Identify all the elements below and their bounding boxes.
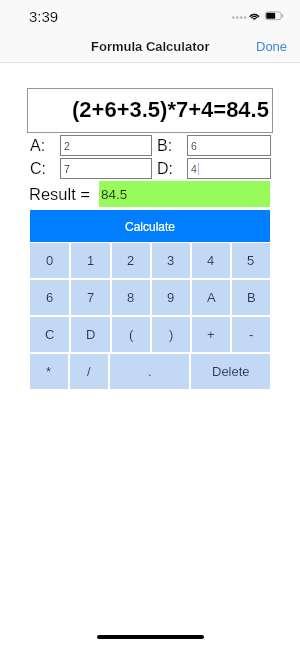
button[interactable]: 9 (152, 280, 190, 315)
staticText: * (46, 364, 52, 379)
staticText: 84.5 (101, 187, 128, 202)
button[interactable]: ( (112, 317, 150, 352)
staticText: / (87, 364, 91, 379)
button[interactable]: A (192, 280, 230, 315)
staticText: A (207, 290, 216, 305)
staticText: 6 (46, 290, 54, 305)
staticText: 9 (167, 290, 175, 305)
button[interactable]: 2 (60, 135, 152, 156)
button[interactable]: 8 (112, 280, 150, 315)
staticText: Calculate (125, 220, 176, 233)
staticText: B: (157, 137, 173, 155)
button[interactable]: 4 (187, 158, 271, 179)
button[interactable]: 3 (152, 243, 190, 278)
staticText: ( (129, 327, 134, 342)
staticText: Formula Calculator (91, 39, 210, 54)
staticText: D: (157, 160, 173, 178)
button[interactable]: C (30, 317, 69, 352)
button[interactable]: 6 (30, 280, 69, 315)
button[interactable]: Calculate (30, 210, 270, 242)
button[interactable]: 4 (192, 243, 230, 278)
button[interactable]: 2 (112, 243, 150, 278)
button[interactable]: 5 (232, 243, 270, 278)
button[interactable]: 1 (71, 243, 110, 278)
button[interactable]: 7 (71, 280, 110, 315)
staticText: 5 (247, 253, 255, 268)
staticText: 7 (64, 163, 70, 175)
staticText: 4 (207, 253, 215, 268)
staticText: Result = (29, 185, 90, 203)
staticText: 2 (127, 253, 135, 268)
staticText: 3 (167, 253, 175, 268)
staticText: A: (30, 137, 46, 155)
button[interactable]: - (232, 317, 270, 352)
staticText: 0 (46, 253, 54, 268)
staticText: 4 (191, 163, 197, 175)
button[interactable]: + (192, 317, 230, 352)
button[interactable]: 0 (30, 243, 69, 278)
button[interactable]: ) (152, 317, 190, 352)
button[interactable]: Delete (191, 354, 270, 389)
button[interactable]: B (232, 280, 270, 315)
button[interactable]: 7 (60, 158, 152, 179)
staticText: 8 (127, 290, 135, 305)
staticText: 1 (87, 253, 95, 268)
staticText: C (45, 327, 55, 342)
button[interactable]: D (71, 317, 110, 352)
button[interactable]: * (30, 354, 68, 389)
button[interactable]: Done (244, 34, 300, 59)
staticText: - (249, 327, 254, 342)
staticText: 3:39 (29, 8, 59, 25)
button[interactable]: / (70, 354, 108, 389)
staticText: ) (169, 327, 174, 342)
staticText: Done (256, 39, 288, 54)
button[interactable]: 6 (187, 135, 271, 156)
staticText: . (148, 364, 152, 379)
staticText: C: (30, 160, 46, 178)
staticText: + (207, 327, 215, 342)
staticText: 2 (64, 140, 70, 152)
staticText: B (247, 290, 256, 305)
staticText: D (86, 327, 96, 342)
staticText: 7 (87, 290, 95, 305)
staticText: (2+6+3.5)*7+4=84.5 (72, 97, 269, 122)
staticText: 6 (191, 140, 197, 152)
staticText: Delete (212, 364, 250, 379)
